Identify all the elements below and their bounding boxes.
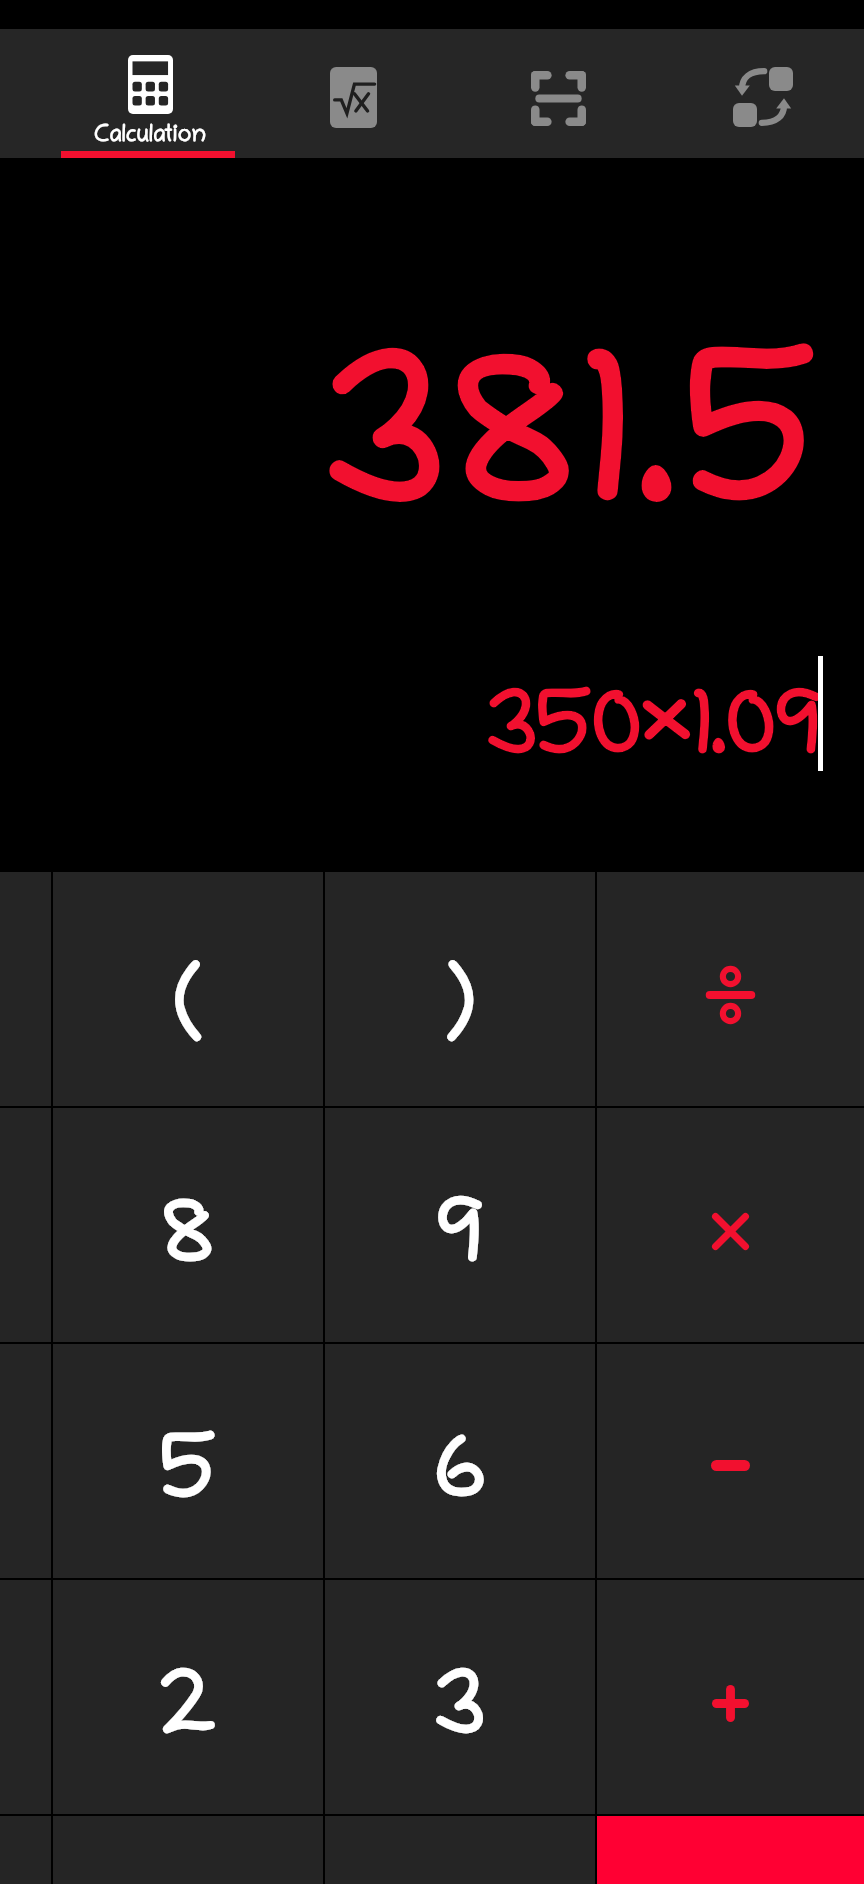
staticText: 3 [433, 1665, 487, 1766]
button[interactable]: Scientific [250, 29, 456, 158]
button[interactable] [597, 1580, 864, 1814]
staticText: Calculation [94, 124, 206, 149]
button[interactable]: 5 [53, 1344, 323, 1578]
button[interactable] [597, 1108, 864, 1342]
staticText: 381.5 [322, 339, 825, 576]
button[interactable]: Calculation [45, 29, 251, 158]
button[interactable]: Convert units [659, 29, 864, 158]
staticText: 5 [159, 1429, 218, 1530]
button[interactable]: ) [325, 872, 595, 1106]
staticText: 2 [158, 1665, 218, 1766]
button[interactable]: 8 [53, 1108, 323, 1342]
button[interactable]: 6 [325, 1344, 595, 1578]
staticText: ( [172, 957, 205, 1058]
button[interactable]: 9 [325, 1108, 595, 1342]
staticText: ) [444, 957, 477, 1058]
button[interactable]: ( [53, 872, 323, 1106]
staticText: 9 [435, 1193, 486, 1294]
button[interactable] [597, 1344, 864, 1578]
staticText: 8 [161, 1193, 215, 1294]
staticText: 6 [434, 1429, 487, 1530]
button[interactable]: 3 [325, 1580, 595, 1814]
staticText: 350×1.09 [485, 676, 821, 790]
button[interactable]: Scan [455, 29, 661, 158]
button[interactable]: 2 [53, 1580, 323, 1814]
button[interactable] [597, 872, 864, 1106]
